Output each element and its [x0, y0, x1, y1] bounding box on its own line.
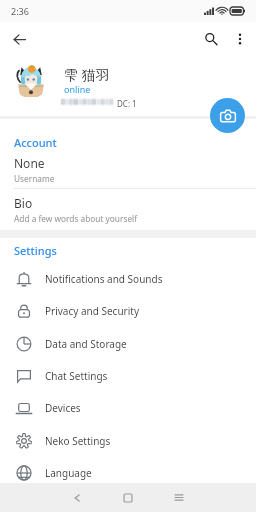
button[interactable]: Back: [52, 483, 102, 512]
staticText: Account: [14, 135, 57, 150]
button[interactable]: Notifications and Sounds: [0, 263, 256, 295]
staticText: 2:36: [11, 5, 29, 17]
staticText: Notifications and Sounds: [45, 272, 163, 286]
staticText: Neko Settings: [45, 434, 111, 448]
staticText: Username: [14, 173, 55, 184]
staticText: Chat Settings: [45, 369, 108, 383]
staticText: Privacy and Security: [45, 304, 140, 318]
button[interactable]: Language: [0, 457, 256, 489]
button[interactable]: Bio: [0, 195, 256, 224]
button[interactable]: [13, 62, 49, 98]
button[interactable]: Privacy and Security: [0, 295, 256, 327]
button[interactable]: Home: [102, 483, 153, 512]
staticText: Bio: [14, 195, 33, 211]
staticText: Add a few words about yourself: [14, 213, 138, 224]
staticText: Devices: [45, 401, 81, 415]
button[interactable]: Neko Settings: [0, 425, 256, 457]
staticText: 雫 猫羽: [64, 65, 110, 84]
button[interactable]: Search: [195, 23, 226, 54]
button[interactable]: None: [0, 155, 256, 184]
staticText: Data and Storage: [45, 337, 127, 351]
button[interactable]: More options: [226, 25, 253, 52]
button[interactable]: Devices: [0, 392, 256, 424]
staticText: online: [64, 83, 91, 95]
button[interactable]: Data and Storage: [0, 328, 256, 360]
button[interactable]: Change profile photo: [210, 98, 245, 133]
button[interactable]: Chat Settings: [0, 360, 256, 392]
staticText: Language: [45, 466, 92, 480]
staticText: DC: 1: [117, 98, 137, 109]
button[interactable]: Recents: [153, 483, 204, 512]
staticText: Settings: [14, 243, 57, 258]
button[interactable]: Back: [6, 26, 32, 52]
staticText: None: [14, 155, 45, 171]
